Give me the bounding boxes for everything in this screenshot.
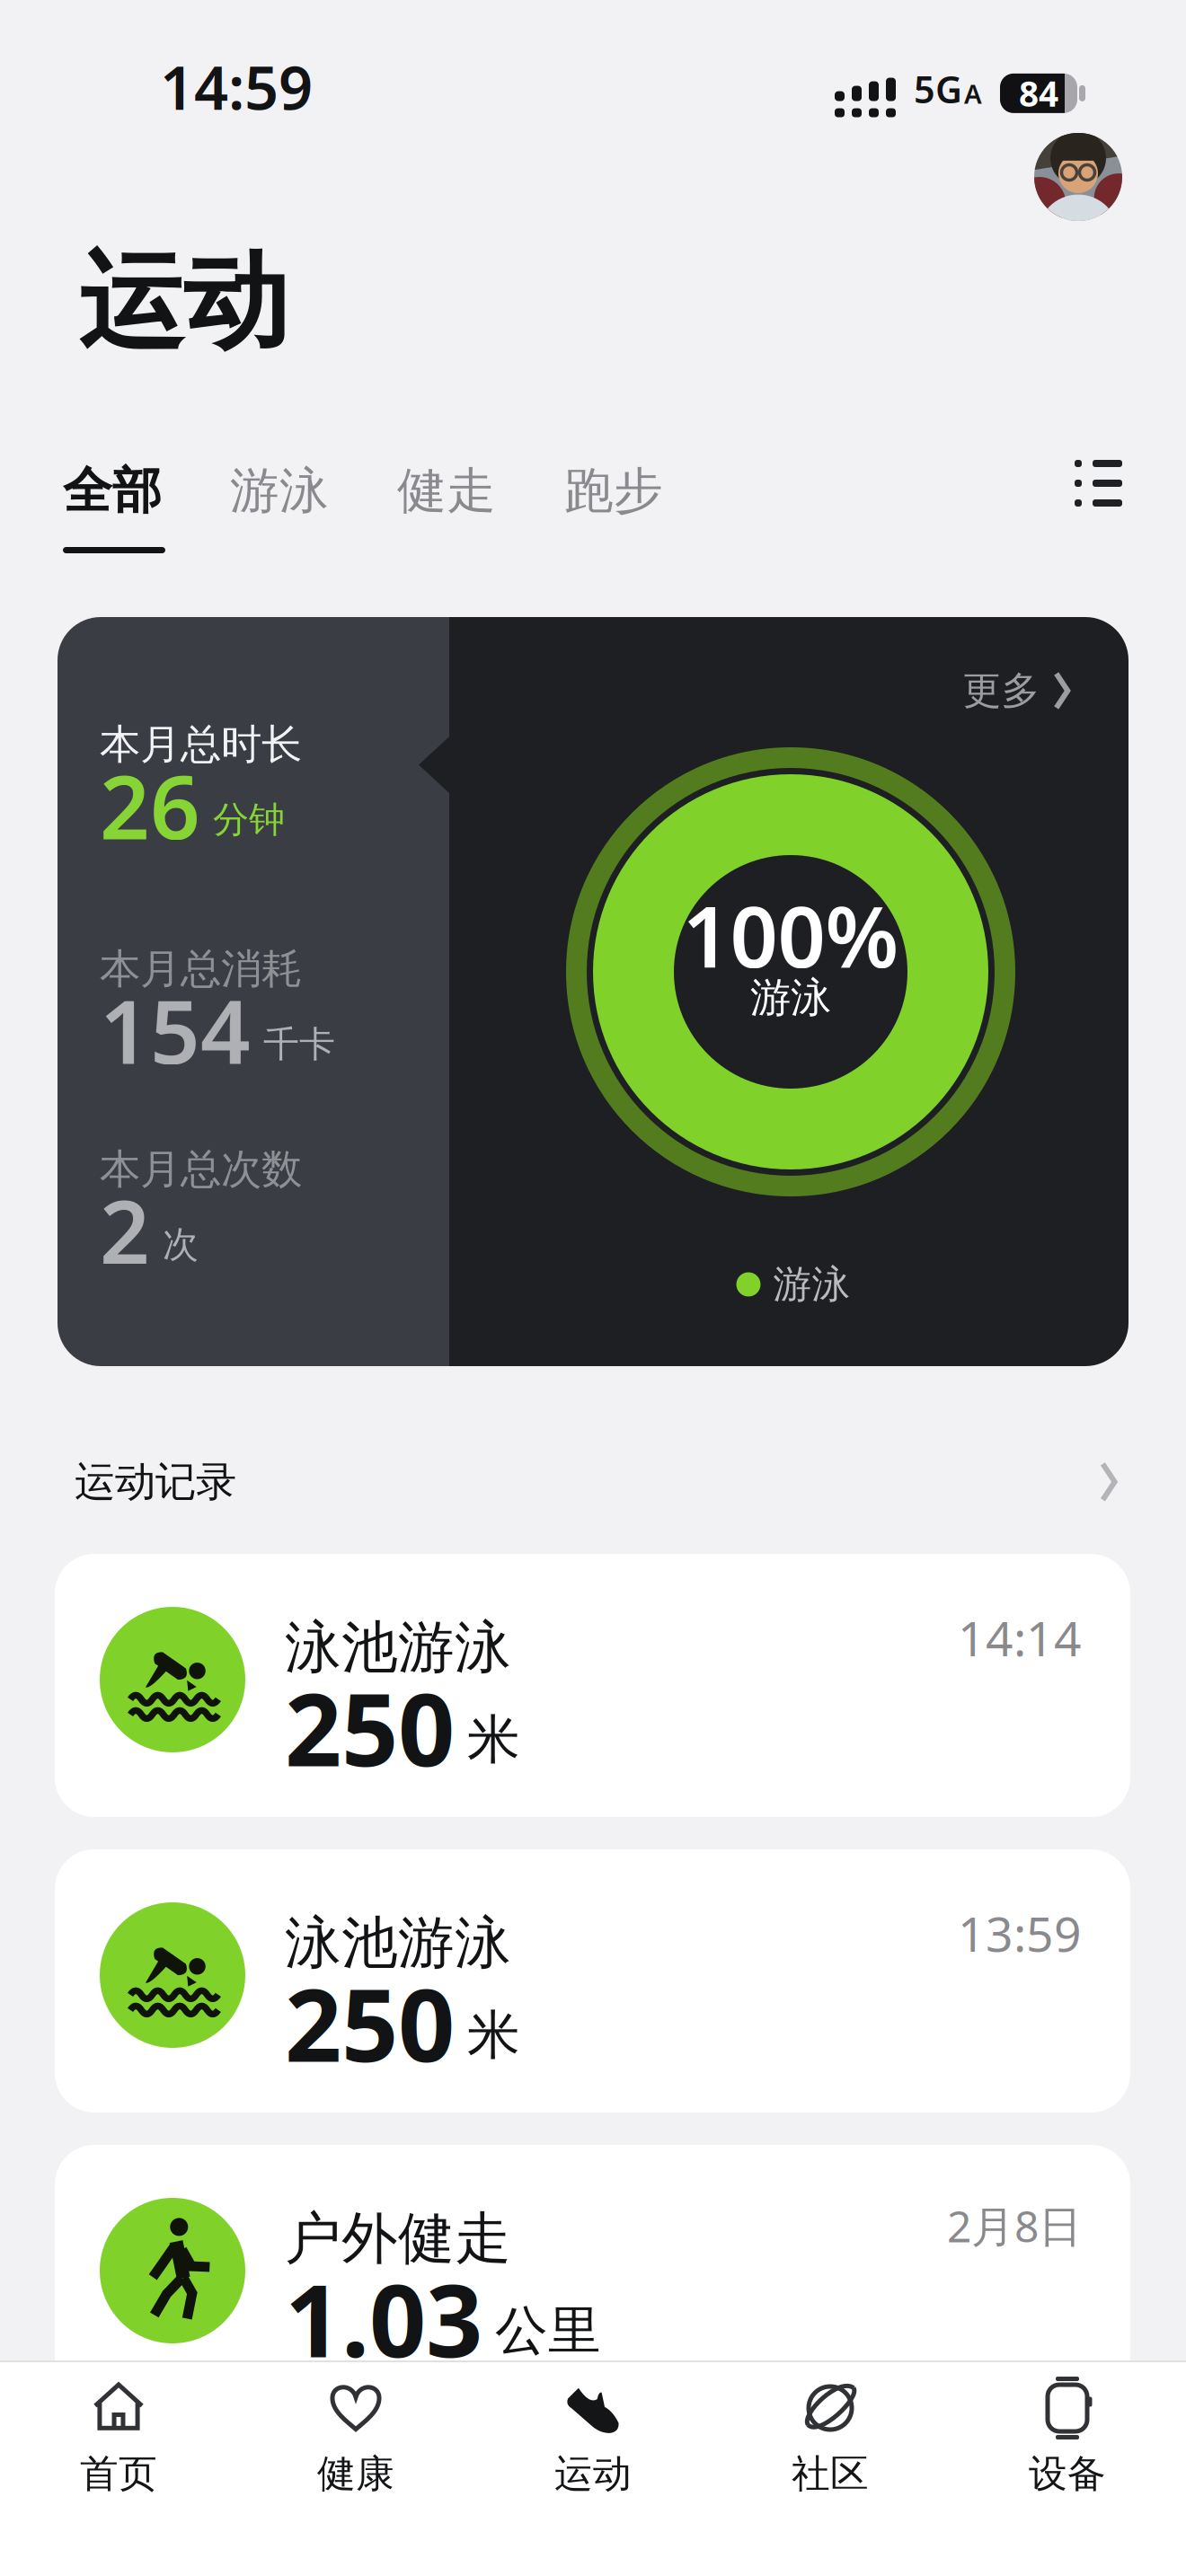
- staticText: 本月总消耗: [100, 944, 302, 994]
- button[interactable]: 运动: [474, 2380, 712, 2497]
- staticText: 1.03: [285, 2253, 482, 2385]
- button[interactable]: [1075, 460, 1122, 507]
- staticText: 250: [285, 1957, 455, 2089]
- staticText: 健走: [397, 461, 496, 521]
- staticText: 2: [100, 1172, 150, 1288]
- staticText: 本月总次数: [100, 1144, 302, 1194]
- staticText: A: [964, 76, 982, 111]
- staticText: 运动: [554, 2450, 632, 2497]
- staticText: 全部: [63, 461, 162, 521]
- staticText: 游泳: [773, 1261, 850, 1308]
- button[interactable]: 健走: [397, 461, 496, 521]
- staticText: 次: [163, 1223, 199, 1267]
- button[interactable]: 更多: [963, 667, 1071, 714]
- staticText: 14:59: [160, 47, 313, 126]
- button[interactable]: 泳池游泳: [55, 1849, 1130, 2113]
- button[interactable]: 户外健走: [55, 2145, 1130, 2408]
- staticText: 更多: [963, 667, 1040, 714]
- staticText: 84: [1019, 70, 1058, 116]
- staticText: 泳池游泳: [285, 1909, 511, 1978]
- staticText: 100%: [682, 879, 899, 991]
- staticText: 本月总时长: [100, 719, 302, 769]
- staticText: 米: [467, 2003, 520, 2068]
- button[interactable]: 泳池游泳: [55, 1554, 1130, 1817]
- staticText: 14:14: [958, 1606, 1082, 1670]
- staticText: 游泳: [750, 973, 831, 1023]
- staticText: 设备: [1029, 2450, 1106, 2497]
- staticText: 跑步: [564, 461, 663, 521]
- staticText: 户外健走: [285, 2204, 511, 2273]
- staticText: 13:59: [958, 1901, 1082, 1965]
- button[interactable]: [1034, 133, 1122, 221]
- staticText: 首页: [80, 2450, 157, 2497]
- staticText: 泳池游泳: [285, 1613, 511, 1682]
- staticText: 分钟: [213, 798, 285, 842]
- staticText: 2月8日: [947, 2197, 1082, 2254]
- button[interactable]: 游泳: [230, 461, 329, 521]
- staticText: 5G: [914, 64, 962, 114]
- button[interactable]: 首页: [0, 2380, 237, 2497]
- staticText: 千卡: [263, 1022, 335, 1066]
- staticText: 运动: [78, 237, 288, 367]
- staticText: 游泳: [230, 461, 329, 521]
- staticText: 社区: [792, 2450, 869, 2497]
- staticText: 米: [467, 1707, 520, 1772]
- button[interactable]: 全部: [63, 461, 162, 521]
- button[interactable]: 跑步: [564, 461, 663, 521]
- staticText: 公里: [495, 2298, 601, 2363]
- staticText: 运动记录: [75, 1457, 236, 1507]
- button[interactable]: 社区: [712, 2380, 949, 2497]
- staticText: 健康: [317, 2450, 394, 2497]
- staticText: 26: [100, 747, 200, 863]
- staticText: 154: [100, 972, 251, 1088]
- button[interactable]: 设备: [949, 2380, 1186, 2497]
- button[interactable]: 运动记录: [0, 1457, 1186, 1507]
- staticText: 250: [285, 1662, 455, 1794]
- button[interactable]: 健康: [237, 2380, 474, 2497]
